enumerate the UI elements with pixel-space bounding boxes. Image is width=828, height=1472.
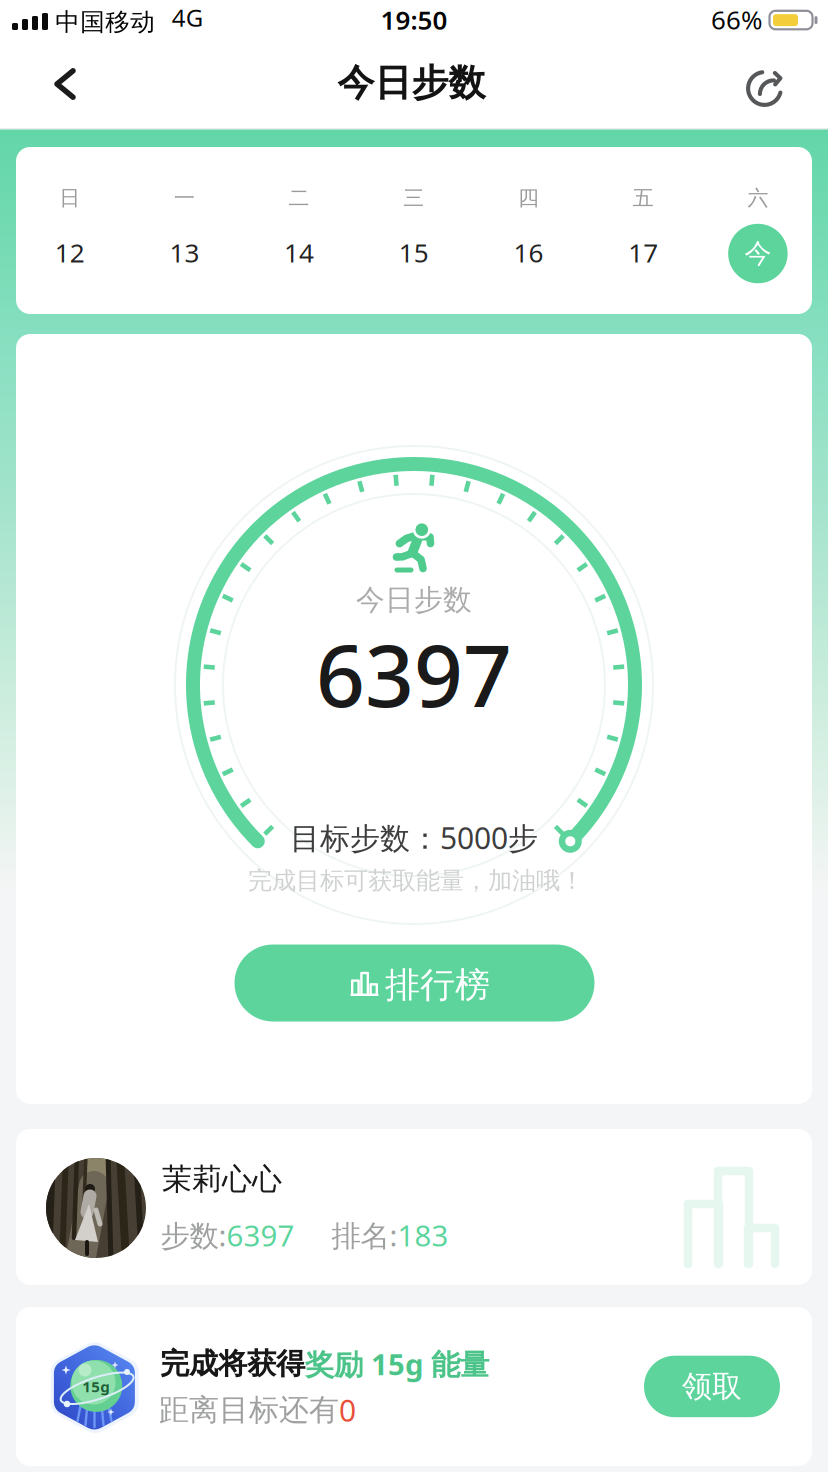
staticText: 日 (59, 185, 80, 211)
button[interactable]: 二 (242, 147, 356, 314)
staticText: 完成目标可获取能量，加油哦！ (248, 865, 584, 896)
staticText: 完成将获得 (160, 1345, 305, 1382)
staticText: 12 (55, 235, 85, 270)
staticText: 183 (398, 1215, 449, 1255)
staticText: 目标步数：5000步 (290, 817, 538, 858)
staticText: 6397 (316, 616, 512, 732)
staticText: 步数: (161, 1215, 227, 1255)
button[interactable]: 日 (12, 147, 127, 314)
staticText: 15 (399, 235, 429, 270)
staticText: 15g (82, 1376, 109, 1397)
staticText: 排行榜 (385, 963, 490, 1007)
button[interactable]: 四 (471, 147, 586, 314)
staticText: 中国移动 (55, 7, 155, 37)
staticText: 四 (518, 185, 539, 211)
button[interactable]: 一 (127, 147, 242, 314)
staticText: 领取 (682, 1368, 742, 1405)
button[interactable]: 六 (701, 147, 815, 314)
staticText: 66% (711, 2, 763, 37)
staticText: 17 (628, 235, 658, 270)
staticText: 六 (747, 185, 768, 211)
button[interactable]: 领取 (644, 1356, 780, 1417)
staticText: 茉莉心心 (162, 1160, 282, 1198)
staticText: 4G (172, 1, 203, 34)
button[interactable]: 三 (356, 147, 471, 314)
staticText: 一 (174, 185, 195, 211)
staticText: 二 (289, 185, 310, 211)
button[interactable]: 五 (586, 147, 701, 314)
staticText: 今 (744, 236, 771, 270)
staticText: 五 (633, 185, 654, 211)
button[interactable]: 分享 (718, 44, 810, 128)
staticText: 排名: (332, 1215, 398, 1255)
staticText: 16 (513, 235, 543, 270)
staticText: 13 (169, 235, 199, 270)
button[interactable]: 返回 (22, 44, 114, 128)
staticText: 0 (339, 1390, 356, 1431)
staticText: 今日步数 (356, 582, 472, 618)
staticText: 6397 (227, 1215, 295, 1255)
staticText: 14 (284, 235, 314, 270)
staticText: 三 (403, 185, 424, 211)
button[interactable]: 排行榜 (234, 944, 594, 1021)
staticText: 奖励 15g 能量 (305, 1344, 489, 1384)
staticText: 距离目标还有 (159, 1391, 339, 1429)
staticText: 19:50 (380, 2, 447, 37)
staticText: 今日步数 (337, 60, 485, 106)
button[interactable]: 茉莉心心 (16, 1129, 812, 1285)
